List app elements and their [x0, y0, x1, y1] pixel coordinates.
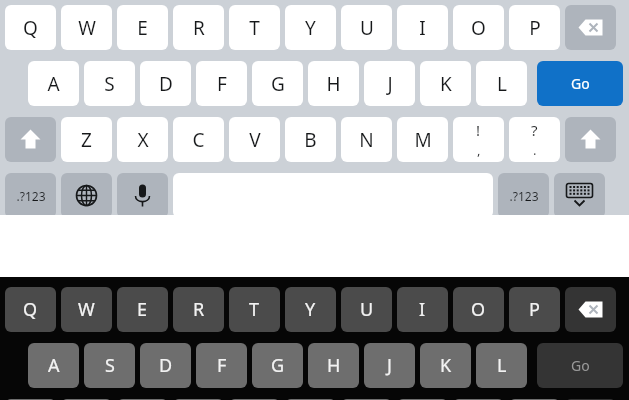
button[interactable]: Shift — [565, 117, 616, 162]
button[interactable] — [285, 399, 336, 400]
staticText: O — [471, 297, 486, 322]
button[interactable]: P — [509, 287, 560, 332]
staticText: S — [104, 71, 115, 97]
staticText: F — [217, 71, 227, 97]
button[interactable]: Hide keyboard — [554, 173, 605, 218]
button[interactable] — [5, 399, 56, 400]
staticText: . — [533, 141, 537, 159]
button[interactable]: T — [229, 287, 280, 332]
button[interactable]: Shift — [565, 399, 616, 400]
button[interactable]: A — [28, 61, 79, 106]
button[interactable]: .?123 — [498, 173, 549, 218]
staticText: A — [47, 71, 60, 97]
button[interactable]: J — [364, 61, 415, 106]
button[interactable]: .?123 — [5, 173, 56, 218]
button[interactable]: X — [117, 117, 168, 162]
button[interactable] — [397, 399, 448, 400]
button[interactable]: R — [173, 287, 224, 332]
button[interactable]: K — [420, 343, 471, 388]
button[interactable]: E — [117, 5, 168, 50]
staticText: L — [497, 71, 507, 97]
button[interactable]: W — [61, 287, 112, 332]
staticText: J — [387, 353, 392, 378]
staticText: X — [137, 127, 149, 153]
staticText: Z — [81, 127, 92, 153]
staticText: Y — [305, 297, 316, 322]
staticText: D — [159, 353, 173, 378]
staticText: Q — [23, 297, 38, 322]
button[interactable]: S — [84, 61, 135, 106]
staticText: E — [137, 15, 148, 41]
button[interactable]: Change language — [61, 173, 112, 218]
staticText: R — [193, 297, 205, 322]
button[interactable]: E — [117, 287, 168, 332]
button[interactable]: D — [140, 343, 191, 388]
button[interactable]: Y — [285, 287, 336, 332]
button[interactable]: D — [140, 61, 191, 106]
button[interactable] — [229, 399, 280, 400]
button[interactable]: B — [285, 117, 336, 162]
button[interactable]: F — [196, 61, 247, 106]
staticText: ? — [531, 120, 538, 140]
button[interactable]: Z — [61, 117, 112, 162]
staticText: U — [360, 15, 374, 41]
button[interactable] — [341, 399, 392, 400]
button[interactable]: U — [341, 5, 392, 50]
button[interactable]: ! — [453, 117, 504, 162]
button[interactable]: R — [173, 5, 224, 50]
button[interactable]: Shift — [5, 117, 56, 162]
button[interactable]: V — [229, 117, 280, 162]
button[interactable]: K — [420, 61, 471, 106]
button[interactable]: Go — [537, 61, 623, 106]
button[interactable]: Q — [5, 287, 56, 332]
button[interactable]: S — [84, 343, 135, 388]
button[interactable]: Voice input — [117, 173, 168, 218]
button[interactable]: H — [308, 61, 359, 106]
staticText: Q — [23, 15, 38, 41]
button[interactable]: P — [509, 5, 560, 50]
button[interactable]: J — [364, 343, 415, 388]
staticText: P — [529, 297, 540, 322]
staticText: F — [217, 353, 227, 378]
button[interactable]: I — [397, 5, 448, 50]
staticText: G — [271, 71, 285, 97]
button[interactable]: Backspace — [565, 5, 616, 50]
button[interactable]: F — [196, 343, 247, 388]
button[interactable] — [61, 399, 112, 400]
button[interactable]: L — [476, 343, 527, 388]
button[interactable]: I — [397, 287, 448, 332]
button[interactable] — [173, 399, 224, 400]
button[interactable]: L — [476, 61, 527, 106]
staticText: D — [159, 71, 173, 97]
staticText: E — [137, 297, 148, 322]
button[interactable]: M — [397, 117, 448, 162]
staticText: N — [359, 127, 374, 153]
button[interactable]: ? — [509, 117, 560, 162]
button[interactable]: A — [28, 343, 79, 388]
button[interactable] — [509, 399, 560, 400]
staticText: S — [105, 353, 115, 378]
button[interactable]: Q — [5, 5, 56, 50]
button[interactable]: W — [61, 5, 112, 50]
staticText: B — [304, 127, 317, 153]
button[interactable]: G — [252, 61, 303, 106]
button[interactable] — [453, 399, 504, 400]
button[interactable]: Y — [285, 5, 336, 50]
button[interactable]: H — [308, 343, 359, 388]
staticText: K — [440, 353, 452, 378]
button[interactable]: C — [173, 117, 224, 162]
button[interactable]: Go — [537, 343, 623, 388]
staticText: K — [440, 71, 452, 97]
staticText: Go — [571, 356, 590, 375]
button[interactable]: Backspace — [565, 287, 616, 332]
button[interactable]: T — [229, 5, 280, 50]
button[interactable]: N — [341, 117, 392, 162]
button[interactable]: U — [341, 287, 392, 332]
button[interactable] — [117, 399, 168, 400]
button[interactable]: O — [453, 5, 504, 50]
button[interactable]: O — [453, 287, 504, 332]
staticText: P — [529, 15, 541, 41]
button[interactable]: G — [252, 343, 303, 388]
staticText: V — [249, 127, 261, 153]
